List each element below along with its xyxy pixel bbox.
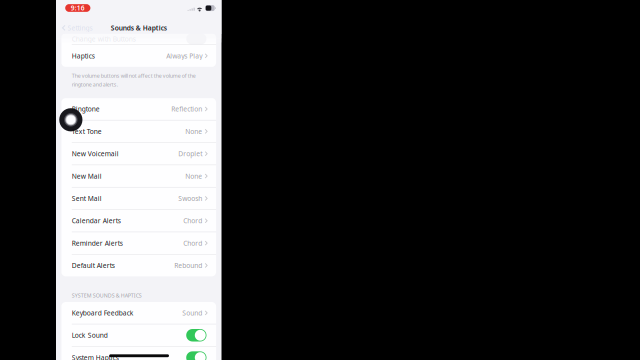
button[interactable]: Sent Mail [61,187,216,209]
button[interactable]: Ringtone [61,98,216,120]
staticText: Haptics [72,51,95,60]
button[interactable]: Haptics [61,45,216,67]
button[interactable]: Lock Sound [61,324,216,346]
staticText: Sound [182,308,202,317]
button[interactable]: Settings [56,18,93,31]
button[interactable]: New Mail [61,165,216,187]
staticText: Reminder Alerts [72,239,123,248]
button[interactable]: Calendar Alerts [61,210,216,232]
staticText: Reflection [171,105,202,113]
button[interactable]: Default Alerts [61,255,216,276]
staticText: Rebound [174,261,202,270]
staticText: Swoosh [178,194,202,203]
staticText: New Mail [72,172,102,180]
staticText: Ringtone [72,105,100,113]
staticText: Lock Sound [72,331,108,340]
staticText: Text Tone [72,127,102,136]
staticText: New Voicemail [72,149,119,158]
staticText: Sounds & Haptics [111,23,167,32]
staticText: 9:16 [71,4,85,12]
button[interactable]: System Haptics [61,347,216,360]
staticText: Sent Mail [72,194,102,203]
staticText: Default Alerts [72,261,115,270]
staticText: Keyboard Feedback [72,308,134,317]
staticText: Always Play [166,51,202,60]
button[interactable]: Text Tone [61,120,216,142]
button[interactable]: Reminder Alerts [61,232,216,254]
staticText: Chord [183,216,202,225]
staticText: Calendar Alerts [72,216,121,225]
staticText: Chord [183,239,202,248]
staticText: Change with Buttons [72,34,136,43]
staticText: None [185,172,202,180]
staticText: ringtone and alerts. [72,81,118,88]
staticText: Settings [68,23,93,32]
button[interactable]: New Voicemail [61,143,216,165]
staticText: System Haptics [72,353,119,360]
button[interactable]: Keyboard Feedback [61,302,216,324]
staticText: Droplet [178,149,202,158]
staticText: None [185,127,202,136]
staticText: SYSTEM SOUNDS & HAPTICS [72,292,142,299]
staticText: The volume buttons will not affect the v… [72,72,196,79]
